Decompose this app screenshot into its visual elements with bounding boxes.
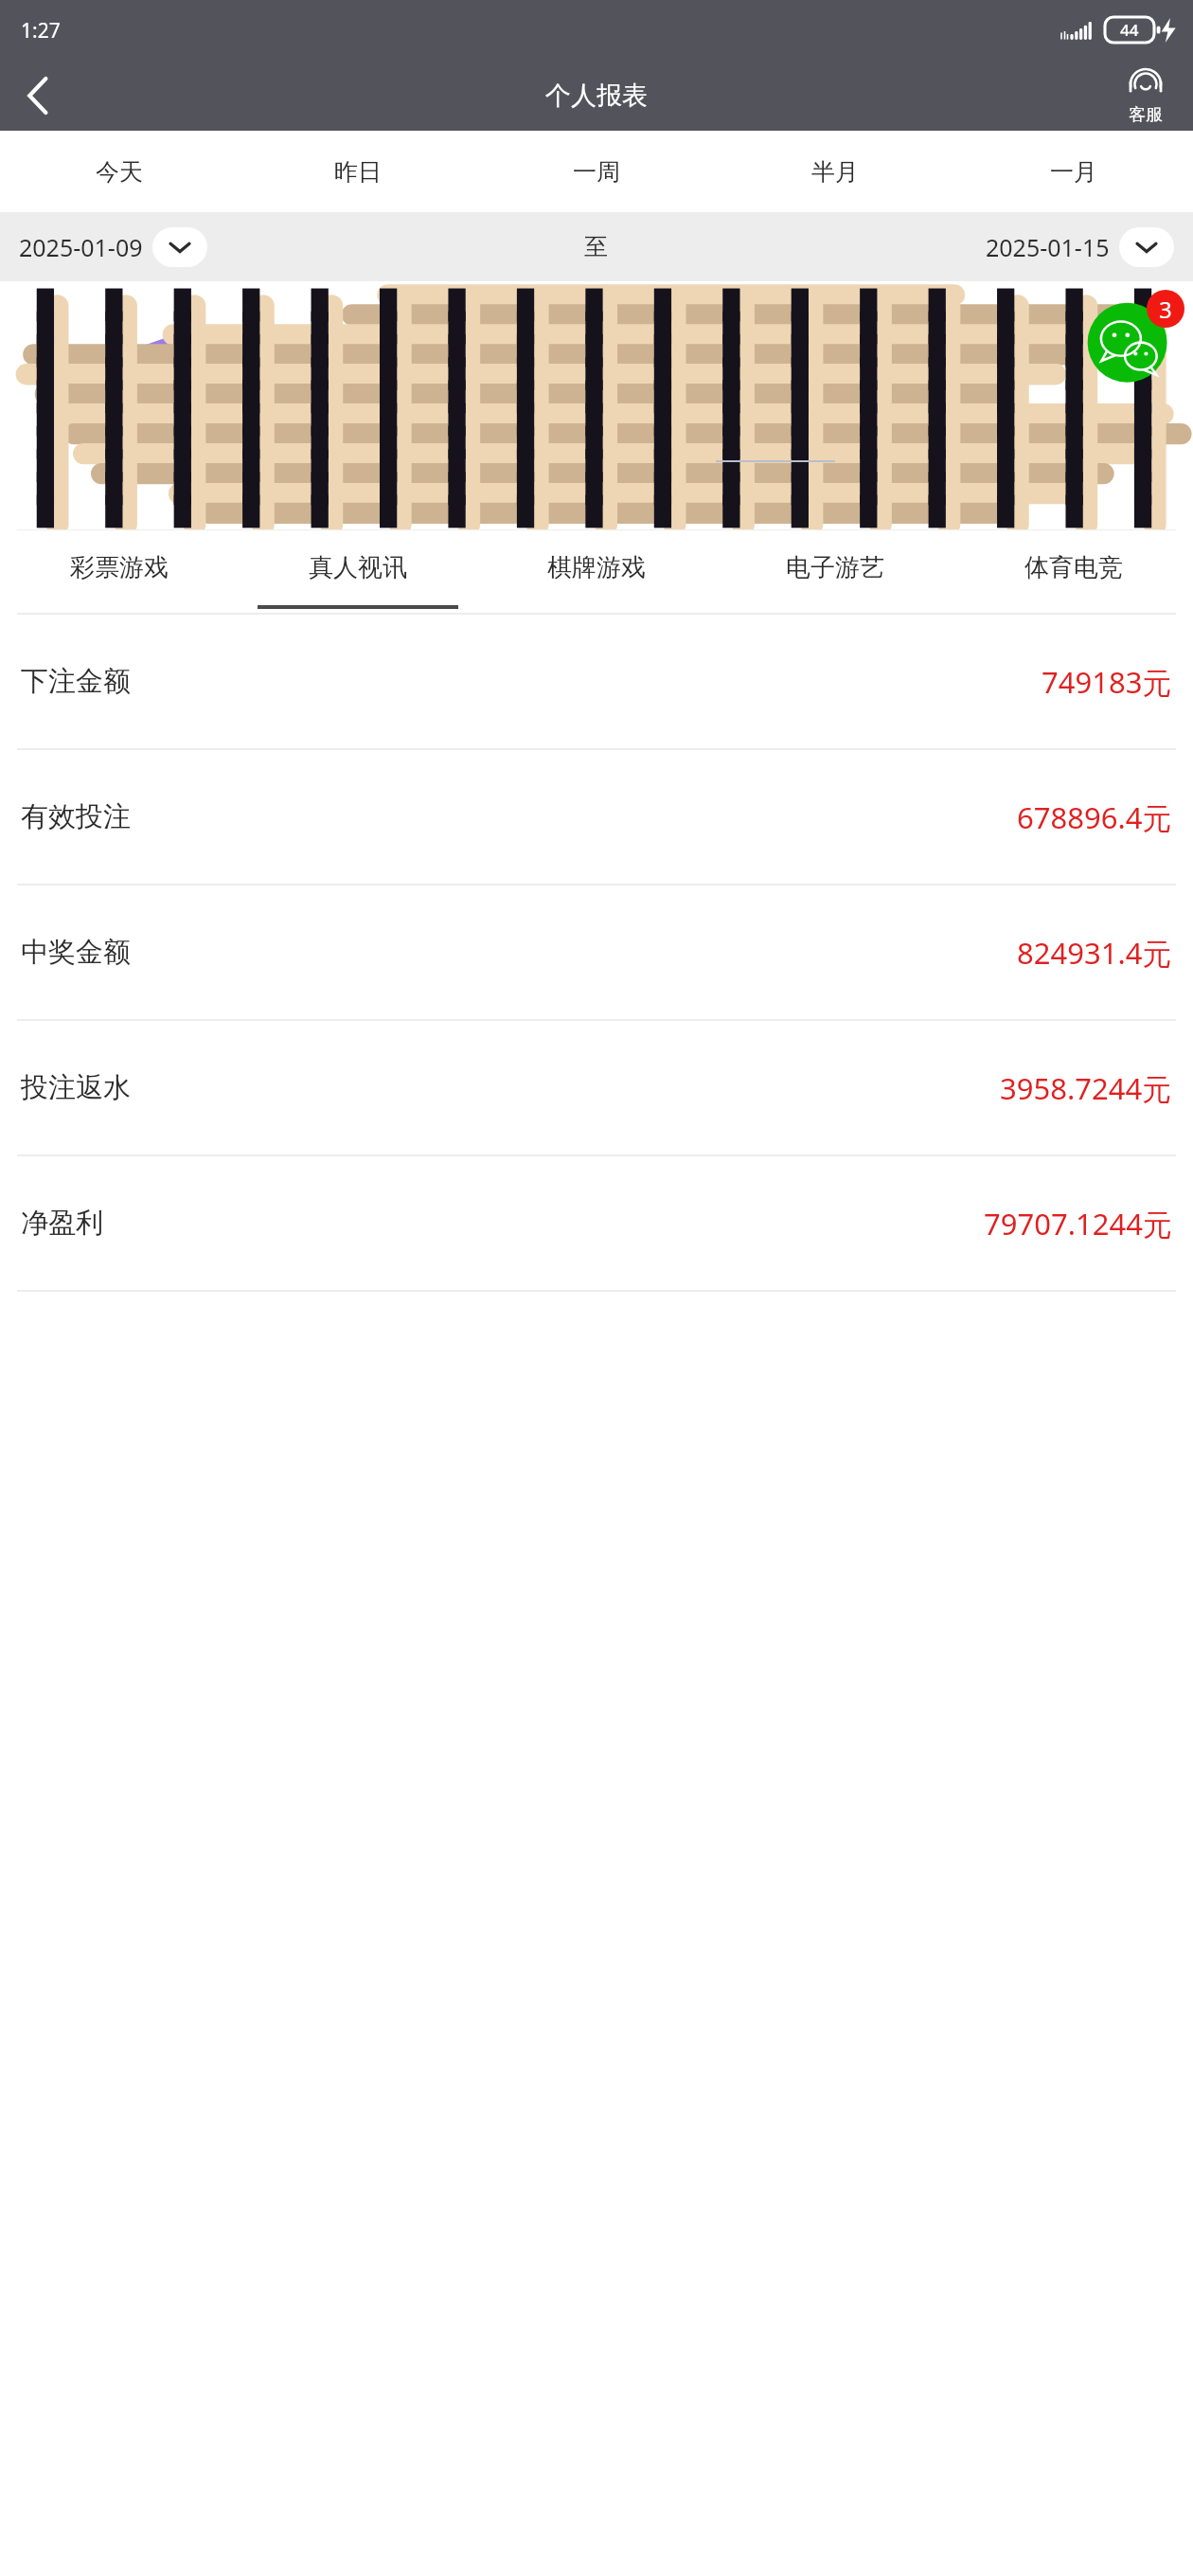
staticText: 824931.4元: [1017, 933, 1172, 973]
staticText: 半月: [811, 157, 859, 187]
staticText: 昨日: [334, 157, 382, 187]
staticText: 下注金额: [21, 664, 131, 699]
button[interactable]: WeChat customer service, 3 unread: [1079, 286, 1188, 395]
button[interactable]: 半月: [716, 131, 954, 212]
staticText: 一月: [1050, 157, 1097, 187]
staticText: 净盈利: [21, 1206, 103, 1241]
staticText: 个人报表: [545, 80, 648, 112]
button[interactable]: 净盈利: [0, 1156, 1193, 1290]
button[interactable]: 中奖金额: [0, 885, 1193, 1019]
staticText: 投注返水: [21, 1070, 131, 1105]
staticText: 一周: [573, 157, 620, 187]
button[interactable]: 棋牌游戏: [477, 530, 716, 613]
button[interactable]: 2025-01-15: [986, 227, 1174, 267]
staticText: 3: [1159, 294, 1172, 325]
staticText: 至: [584, 232, 608, 261]
staticText: 2025-01-09: [19, 231, 143, 263]
staticText: 体育电竞: [1024, 552, 1123, 583]
button[interactable]: 有效投注: [0, 750, 1193, 884]
staticText: 棋牌游戏: [547, 552, 646, 583]
button[interactable]: 真人视讯: [239, 530, 477, 613]
button[interactable]: 彩票游戏: [0, 530, 239, 613]
staticText: 客服: [1129, 104, 1163, 126]
staticText: 2025-01-15: [986, 231, 1110, 263]
staticText: 44: [1120, 19, 1139, 41]
staticText: 3958.7244元: [1000, 1068, 1172, 1108]
staticText: 电子游艺: [786, 552, 884, 583]
button[interactable]: 2025-01-09: [19, 227, 207, 267]
button[interactable]: 今天: [0, 131, 239, 212]
staticText: 79707.1244元: [984, 1204, 1172, 1243]
staticText: 749183元: [1042, 662, 1172, 702]
button[interactable]: Back: [0, 60, 76, 131]
button[interactable]: 客服 Customer service: [1098, 60, 1193, 131]
staticText: 1:27: [21, 17, 61, 45]
button[interactable]: 投注返水: [0, 1021, 1193, 1154]
button[interactable]: 下注金额: [0, 615, 1193, 748]
staticText: 中奖金额: [21, 935, 131, 970]
button[interactable]: 体育电竞: [954, 530, 1193, 613]
staticText: 彩票游戏: [70, 552, 169, 583]
staticText: 678896.4元: [1017, 797, 1172, 837]
staticText: 真人视讯: [309, 552, 407, 583]
staticText: 有效投注: [21, 799, 131, 834]
staticText: 今天: [96, 157, 143, 187]
button[interactable]: 昨日: [239, 131, 477, 212]
button[interactable]: 电子游艺: [716, 530, 954, 613]
button[interactable]: 一月: [954, 131, 1193, 212]
button[interactable]: 一周: [477, 131, 716, 212]
